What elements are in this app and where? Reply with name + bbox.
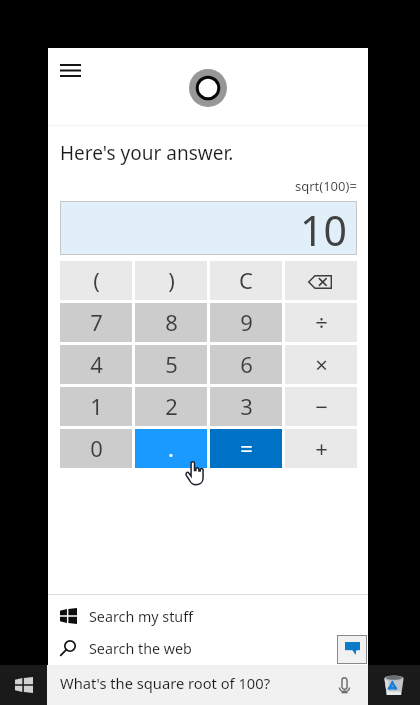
button[interactable]: 8 xyxy=(135,303,207,342)
button[interactable]: 4 xyxy=(60,345,132,384)
button[interactable]: ÷ xyxy=(285,303,357,342)
staticText: × xyxy=(315,349,328,379)
button[interactable]: 6 xyxy=(210,345,282,384)
staticText: 6 xyxy=(240,349,253,379)
staticText: . xyxy=(168,433,174,463)
button[interactable]: . xyxy=(135,429,207,468)
button[interactable]: Search the web xyxy=(48,632,368,664)
button[interactable]: Cortana xyxy=(186,66,230,110)
staticText: 7 xyxy=(90,307,103,337)
button[interactable]: 5 xyxy=(135,345,207,384)
button[interactable]: 1 xyxy=(60,387,132,426)
staticText: 2 xyxy=(165,391,178,421)
staticText: C xyxy=(239,265,253,295)
staticText: 5 xyxy=(165,349,178,379)
button[interactable]: + xyxy=(285,429,357,468)
button[interactable]: 2 xyxy=(135,387,207,426)
button[interactable]: 0 xyxy=(60,429,132,468)
button[interactable]: ) xyxy=(135,261,207,300)
staticText: sqrt(100)= xyxy=(295,177,357,195)
button[interactable]: 3 xyxy=(210,387,282,426)
staticText: 1 xyxy=(90,391,103,421)
staticText: − xyxy=(315,391,328,421)
staticText: ÷ xyxy=(315,307,328,337)
staticText: Here's your answer. xyxy=(60,140,234,166)
staticText: 4 xyxy=(90,349,103,379)
button[interactable]: 7 xyxy=(60,303,132,342)
staticText: + xyxy=(315,433,328,463)
staticText: 0 xyxy=(90,433,103,463)
staticText: 8 xyxy=(165,307,178,337)
button[interactable]: Search my stuff xyxy=(48,600,368,632)
staticText: ) xyxy=(168,265,175,295)
staticText: = xyxy=(240,433,253,463)
button[interactable]: ( xyxy=(60,261,132,300)
staticText: What's the square root of 100? xyxy=(60,673,271,693)
button[interactable]: Start xyxy=(0,665,47,705)
button[interactable]: − xyxy=(285,387,357,426)
staticText: 9 xyxy=(240,307,253,337)
button[interactable]: Voice search xyxy=(334,675,354,695)
button[interactable]: × xyxy=(285,345,357,384)
button[interactable] xyxy=(285,261,357,300)
staticText: Search my stuff xyxy=(89,607,194,626)
button[interactable]: What's the square root of 100? xyxy=(47,665,368,705)
staticText: ( xyxy=(93,265,100,295)
button[interactable]: Recycle Bin xyxy=(368,665,420,705)
staticText: 3 xyxy=(240,391,253,421)
staticText: 10 xyxy=(300,202,347,256)
button[interactable]: C xyxy=(210,261,282,300)
button[interactable]: = xyxy=(210,429,282,468)
staticText: Search the web xyxy=(89,639,192,658)
button[interactable]: 9 xyxy=(210,303,282,342)
button[interactable]: Menu xyxy=(48,52,92,88)
button[interactable]: Send feedback xyxy=(337,635,367,664)
